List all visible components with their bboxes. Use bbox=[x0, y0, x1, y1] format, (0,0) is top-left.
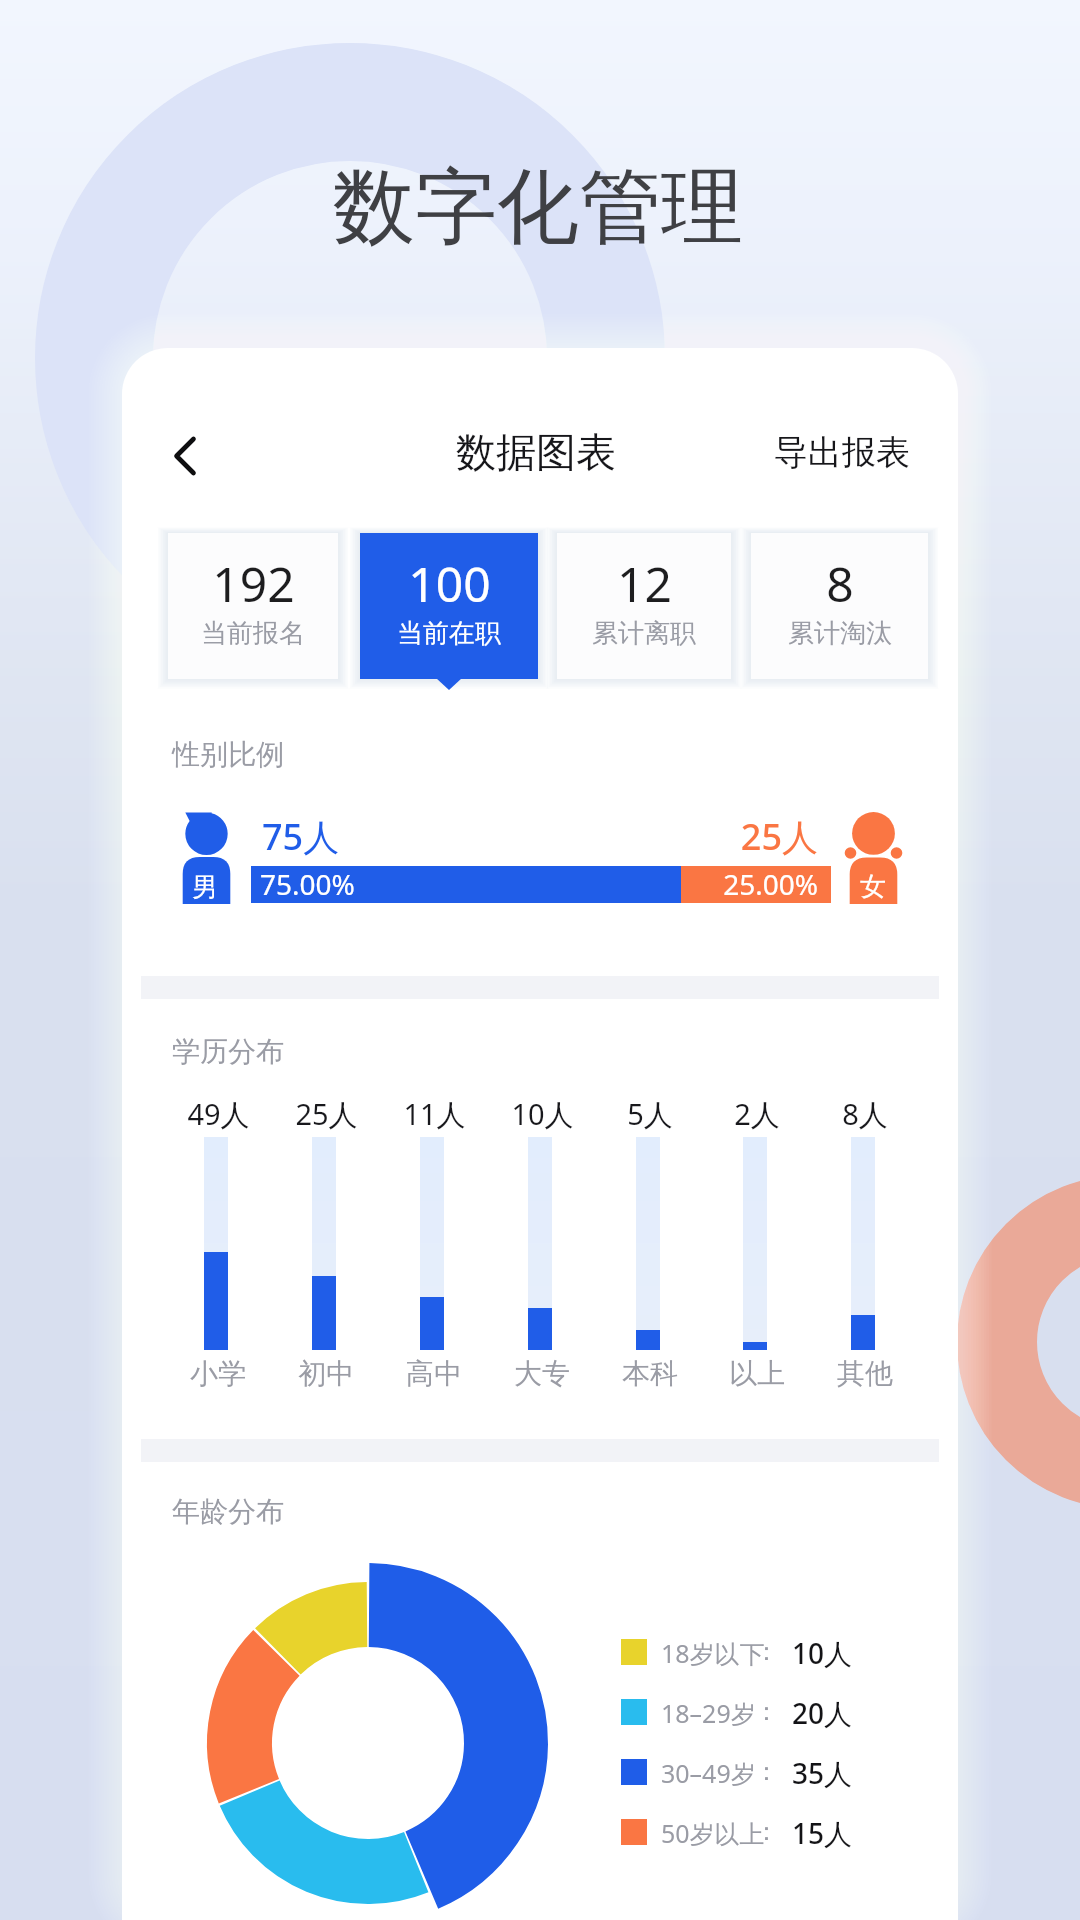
staticText: 25人 bbox=[740, 812, 818, 861]
staticText: 35人 bbox=[792, 1754, 853, 1792]
staticText: 25.00% bbox=[723, 865, 818, 903]
staticText: 25人 bbox=[295, 1094, 358, 1134]
button[interactable] bbox=[751, 533, 928, 679]
staticText: 10人 bbox=[792, 1634, 853, 1672]
staticText: 100 bbox=[408, 551, 491, 616]
staticText: ： bbox=[754, 1636, 779, 1667]
staticText: 小学 bbox=[190, 1356, 246, 1391]
button[interactable]: Back bbox=[152, 421, 222, 491]
staticText: 累计离职 bbox=[592, 617, 696, 650]
staticText: 2人 bbox=[734, 1094, 780, 1134]
staticText: 其他 bbox=[837, 1356, 893, 1391]
staticText: 学历分布 bbox=[172, 1034, 284, 1069]
staticText: 11人 bbox=[403, 1094, 466, 1134]
staticText: 初中 bbox=[298, 1356, 354, 1391]
staticText: 女 bbox=[860, 870, 886, 903]
staticText: 10人 bbox=[511, 1094, 574, 1134]
staticText: ： bbox=[754, 1816, 779, 1847]
staticText: 75.00% bbox=[260, 865, 355, 903]
staticText: 以上 bbox=[729, 1356, 785, 1391]
staticText: 性别比例 bbox=[172, 737, 284, 772]
staticText: ： bbox=[754, 1696, 779, 1727]
staticText: 男 bbox=[192, 871, 218, 904]
staticText: 20人 bbox=[792, 1694, 853, 1732]
button[interactable]: 导出报表 bbox=[772, 428, 912, 476]
staticText: 大专 bbox=[514, 1356, 570, 1391]
staticText: 数据图表 bbox=[456, 427, 616, 477]
staticText: 49人 bbox=[187, 1094, 250, 1134]
button[interactable] bbox=[360, 533, 538, 679]
button[interactable] bbox=[557, 533, 731, 679]
staticText: 30–49岁 bbox=[661, 1756, 756, 1790]
staticText: 导出报表 bbox=[774, 431, 910, 474]
staticText: 75人 bbox=[262, 812, 340, 861]
staticText: 本科 bbox=[622, 1356, 678, 1391]
staticText: 50岁以上 bbox=[661, 1816, 765, 1850]
staticText: 8人 bbox=[842, 1094, 888, 1134]
staticText: 当前报名 bbox=[201, 617, 305, 650]
staticText: 数字化管理 bbox=[333, 156, 743, 259]
staticText: 8 bbox=[826, 551, 854, 616]
staticText: 18岁以下 bbox=[661, 1636, 765, 1670]
staticText: 18–29岁 bbox=[661, 1696, 756, 1730]
staticText: 5人 bbox=[627, 1094, 673, 1134]
staticText: 年龄分布 bbox=[172, 1494, 284, 1529]
button[interactable] bbox=[168, 533, 338, 679]
staticText: 12 bbox=[617, 551, 672, 616]
staticText: ： bbox=[754, 1756, 779, 1787]
staticText: 累计淘汰 bbox=[788, 617, 892, 650]
staticText: 当前在职 bbox=[397, 617, 501, 650]
staticText: 192 bbox=[212, 551, 295, 616]
staticText: 高中 bbox=[406, 1356, 462, 1391]
staticText: 15人 bbox=[792, 1814, 853, 1852]
